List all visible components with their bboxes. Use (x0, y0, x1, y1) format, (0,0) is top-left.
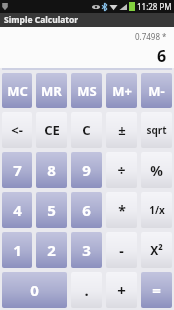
staticText: 2 (47, 240, 56, 260)
staticText: 8 (47, 160, 56, 180)
button[interactable]: sqrt (141, 112, 172, 148)
staticText: X² (150, 242, 163, 258)
button[interactable]: % (141, 152, 172, 188)
button[interactable]: 4 (2, 192, 32, 228)
staticText: 5 (47, 200, 56, 220)
button[interactable]: M- (141, 73, 172, 108)
button[interactable]: 5 (36, 192, 67, 228)
button[interactable]: X² (141, 232, 172, 268)
staticText: 11:28 PM (137, 1, 172, 12)
staticText: ± (118, 121, 126, 139)
button[interactable]: 6 (71, 192, 102, 228)
staticText: MS (77, 82, 97, 100)
staticText: ÷ (117, 161, 126, 180)
staticText: M+ (112, 82, 132, 100)
staticText: + (117, 280, 126, 300)
button[interactable]: C (71, 112, 102, 148)
button[interactable]: 8 (36, 152, 67, 188)
staticText: M- (148, 82, 165, 100)
button[interactable]: MS (71, 73, 102, 108)
staticText: 0 (30, 280, 39, 300)
button[interactable]: = (141, 272, 172, 308)
staticText: 4 (13, 200, 22, 220)
button[interactable]: MR (36, 73, 67, 108)
staticText: 6 (82, 200, 91, 220)
staticText: . (84, 280, 89, 300)
staticText: * (118, 201, 126, 220)
button[interactable]: + (106, 272, 137, 308)
button[interactable]: . (71, 272, 102, 308)
button[interactable]: <- (2, 112, 32, 148)
button[interactable]: 1 (2, 232, 32, 268)
staticText: <- (11, 121, 23, 139)
button[interactable]: MC (2, 73, 32, 108)
staticText: MC (7, 82, 28, 100)
button[interactable]: 7 (2, 152, 32, 188)
button[interactable]: ÷ (106, 152, 137, 188)
staticText: = (152, 280, 161, 300)
staticText: 1 (13, 240, 22, 260)
staticText: 6 (157, 45, 167, 67)
button[interactable]: * (106, 192, 137, 228)
staticText: C (82, 121, 91, 139)
staticText: MR (41, 82, 62, 100)
staticText: % (150, 161, 163, 180)
button[interactable]: - (106, 232, 137, 268)
other: Security (1, 2, 9, 11)
staticText: 7 (13, 160, 22, 180)
staticText: 1/x (149, 203, 165, 217)
button[interactable]: 3 (71, 232, 102, 268)
staticText: CE (44, 121, 60, 139)
button[interactable]: 0 (2, 272, 67, 308)
button[interactable]: CE (36, 112, 67, 148)
button[interactable]: M+ (106, 73, 137, 108)
button[interactable]: 2 (36, 232, 67, 268)
staticText: 3 (82, 240, 91, 260)
staticText: 0.7498 * (135, 31, 167, 42)
staticText: - (119, 241, 124, 260)
button[interactable]: 9 (71, 152, 102, 188)
staticText: 9 (82, 160, 91, 180)
staticText: Simple Calculator (4, 14, 79, 26)
button[interactable]: 1/x (141, 192, 172, 228)
button[interactable]: ± (106, 112, 137, 148)
staticText: sqrt (146, 123, 167, 137)
